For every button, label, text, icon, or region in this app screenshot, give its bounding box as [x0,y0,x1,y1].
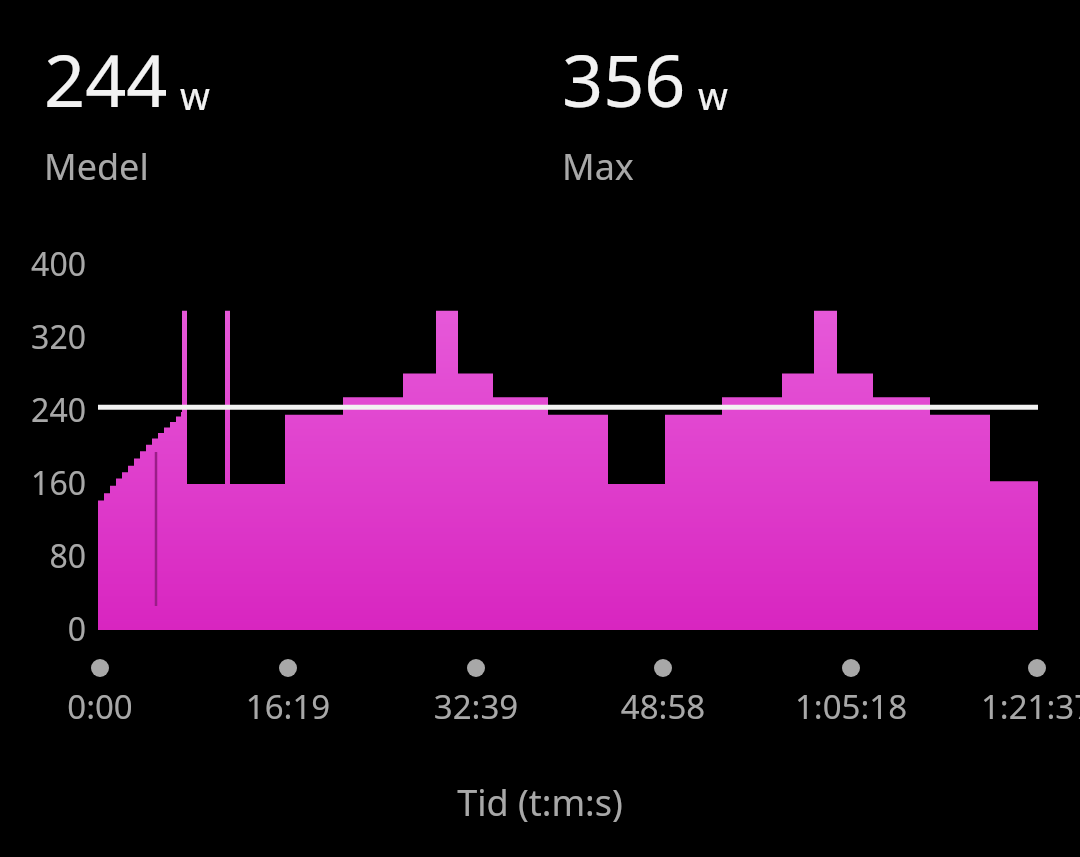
staticText: 320 [0,315,86,359]
staticText: 80 [0,534,86,578]
staticText: 400 [0,242,86,286]
button[interactable]: Power over time chart [0,0,1080,857]
button[interactable]: 356 [520,0,1040,191]
staticText: 356 [562,30,686,128]
staticText: 16:19 [158,684,418,729]
button[interactable]: 244 [0,0,520,191]
staticText: 0:00 [0,684,230,729]
staticText: Tid (t:m:s) [0,778,1080,827]
staticText: Medel [44,142,149,191]
staticText: 48:58 [533,684,793,729]
staticText: w [698,69,728,121]
button[interactable]: Tid (t:m:s) [0,778,1080,827]
staticText: 1:05:18 [721,684,981,729]
staticText: 240 [0,388,86,432]
staticText: 1:21:37 [907,684,1080,729]
staticText: Max [562,142,634,191]
staticText: 0 [0,607,86,651]
staticText: w [180,69,210,121]
staticText: 32:39 [346,684,606,729]
staticText: 160 [0,461,86,505]
staticText: 244 [44,30,168,128]
